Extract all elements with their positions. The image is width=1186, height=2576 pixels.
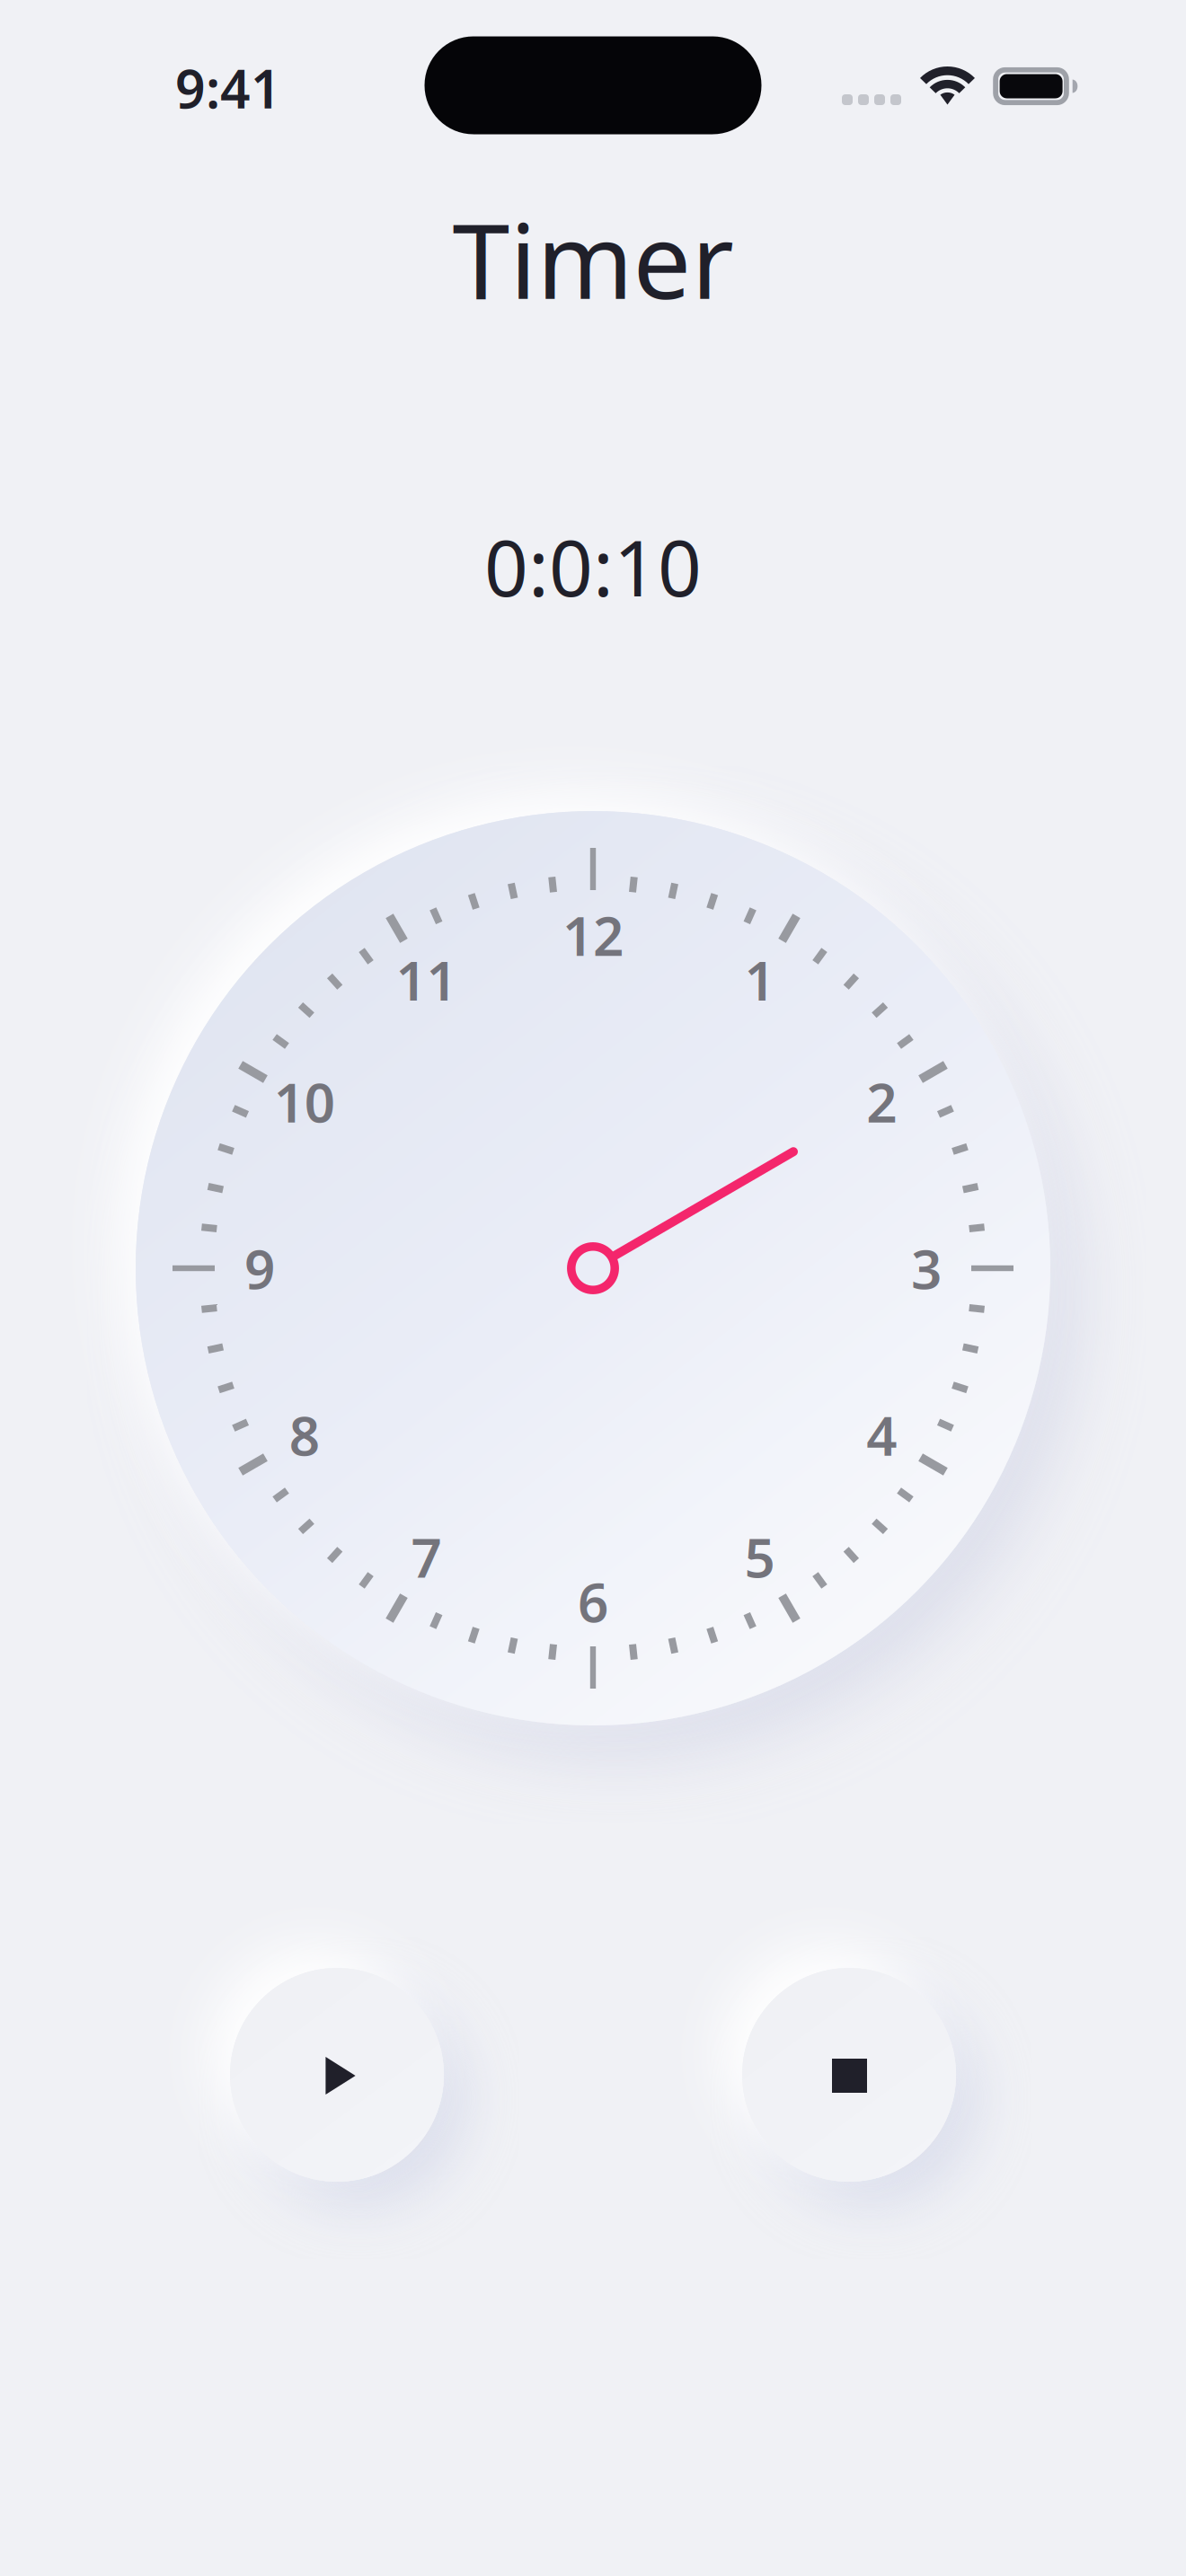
- staticText: Timer: [452, 190, 734, 327]
- staticText: 12: [562, 899, 624, 971]
- button[interactable]: Start: [184, 1922, 490, 2228]
- staticText: 9: [244, 1232, 275, 1304]
- staticText: 2: [866, 1066, 897, 1137]
- staticText: 3: [911, 1232, 942, 1304]
- staticText: 4: [866, 1399, 897, 1471]
- staticText: 10: [274, 1066, 335, 1137]
- staticText: 5: [744, 1521, 775, 1593]
- staticText: 6: [578, 1566, 608, 1637]
- staticText: 1: [744, 944, 775, 1015]
- staticText: 11: [396, 944, 457, 1015]
- staticText: 8: [289, 1399, 320, 1471]
- staticText: 9:41: [175, 53, 281, 123]
- staticText: 0:0:10: [484, 516, 702, 618]
- staticText: 7: [411, 1521, 442, 1593]
- button[interactable]: Stop: [696, 1922, 1002, 2228]
